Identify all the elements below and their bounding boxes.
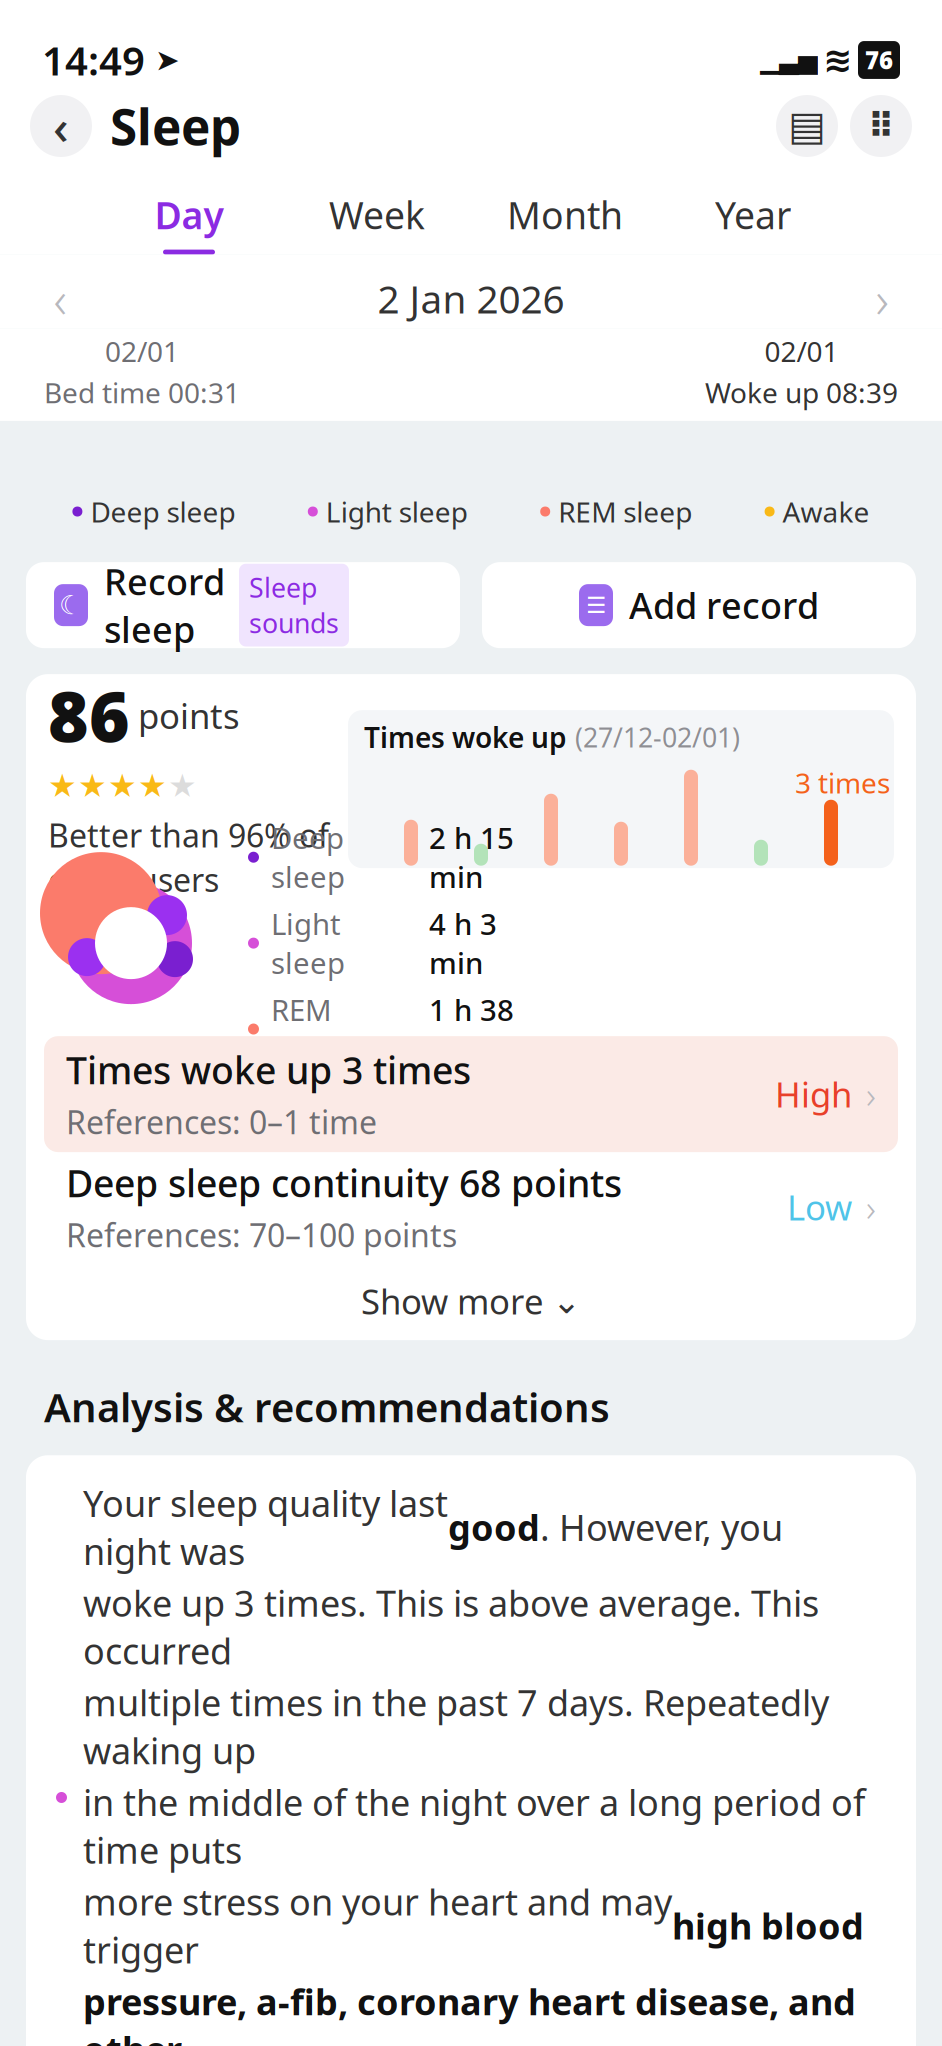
- staticText: Add record: [629, 581, 819, 629]
- staticText: 4 h 3 min: [429, 904, 497, 982]
- button[interactable]: Next day: [852, 269, 912, 329]
- staticText: ⌄: [552, 1281, 581, 1321]
- staticText: more stress on your heart and may trigge…: [83, 1878, 672, 1973]
- staticText: ›: [875, 265, 888, 332]
- staticText: Times woke up: [364, 718, 567, 756]
- button[interactable]: Deep sleep continuity 68 points: [44, 1152, 898, 1262]
- staticText: ⠿: [867, 106, 894, 146]
- staticText: 3 times: [795, 764, 890, 801]
- staticText: Deep sleep: [90, 493, 235, 530]
- button[interactable]: Day: [95, 190, 283, 255]
- staticText: 02/01: [764, 333, 838, 370]
- button[interactable]: Calendar: [776, 95, 838, 157]
- button[interactable]: Year: [659, 190, 847, 255]
- staticText: 14:49: [42, 33, 145, 86]
- staticText: Week: [329, 190, 425, 240]
- staticText: REM sleep: [271, 990, 345, 1068]
- staticText: high blood: [672, 1902, 864, 1949]
- staticText: 2 h 15 min: [429, 818, 514, 896]
- staticText: in the middle of the night over a long p…: [83, 1778, 865, 1874]
- staticText: woke up 3 times. This is above average. …: [83, 1579, 819, 1674]
- staticText: ➤: [145, 43, 180, 77]
- staticText: Deep sleep continuity 68 points: [66, 1158, 622, 1208]
- staticText: ★: [78, 767, 107, 804]
- staticText: ›: [866, 1069, 876, 1119]
- staticText: 86: [48, 669, 130, 761]
- button[interactable]: Previous day: [30, 269, 90, 329]
- staticText: 76: [865, 44, 893, 76]
- button[interactable]: Week: [283, 190, 471, 255]
- staticText: (27/12-02/01): [575, 719, 740, 755]
- staticText: Day: [154, 190, 223, 240]
- button[interactable]: Month: [471, 190, 659, 255]
- button[interactable]: ☰: [482, 562, 916, 648]
- staticText: ★: [168, 767, 197, 804]
- staticText: Awake: [783, 493, 870, 530]
- staticText: Woke up 08:39: [705, 374, 898, 411]
- staticText: multiple times in the past 7 days. Repea…: [83, 1678, 829, 1774]
- staticText: High: [775, 1071, 852, 1117]
- button[interactable]: ☾: [26, 562, 460, 648]
- staticText: good: [448, 1503, 540, 1551]
- staticText: Light sleep: [271, 904, 345, 982]
- staticText: ★: [138, 767, 167, 804]
- staticText: ▤: [788, 103, 826, 149]
- staticText: Low: [787, 1184, 852, 1230]
- staticText: points: [138, 692, 240, 738]
- staticText: 2 Jan 2026: [377, 273, 564, 324]
- staticText: References: 0–1 time: [66, 1101, 377, 1143]
- staticText: Month: [507, 190, 623, 240]
- staticText: ☾: [59, 590, 83, 620]
- staticText: Deep sleep: [271, 818, 345, 896]
- button[interactable]: Back: [30, 94, 92, 158]
- button[interactable]: More options: [850, 95, 912, 157]
- staticText: Year: [715, 190, 791, 240]
- staticText: Show more: [361, 1278, 544, 1324]
- staticText: Record sleep: [104, 557, 225, 653]
- staticText: ›: [866, 1182, 876, 1232]
- staticText: Light sleep: [326, 493, 468, 530]
- staticText: ‹: [53, 265, 66, 332]
- staticText: Analysis & recommendations: [44, 1380, 610, 1433]
- staticText: ★: [48, 767, 77, 804]
- staticText: ☰: [586, 592, 606, 618]
- staticText: References: 70–100 points: [66, 1214, 457, 1256]
- staticText: Your sleep quality last night was: [83, 1479, 448, 1575]
- staticText: other users: [48, 858, 219, 901]
- staticText: Sleep sounds: [249, 570, 339, 640]
- staticText: Sleep: [110, 93, 241, 159]
- staticText: 02/01: [105, 333, 179, 370]
- staticText: ≋: [823, 40, 852, 80]
- button[interactable]: Times woke up 3 times: [44, 1036, 898, 1152]
- button[interactable]: Show more: [26, 1262, 916, 1340]
- staticText: Bed time 00:31: [44, 374, 240, 411]
- staticText: [817, 45, 823, 75]
- staticText: REM sleep: [558, 493, 692, 530]
- staticText: ‹: [53, 94, 69, 158]
- staticText: 1 h 38 min: [429, 990, 514, 1068]
- staticText: . However, you: [540, 1503, 783, 1551]
- staticText: Better than 96% of: [48, 814, 329, 856]
- staticText: ▁▃▅: [760, 46, 817, 74]
- staticText: Times woke up 3 times: [66, 1045, 471, 1095]
- staticText: ★: [108, 767, 137, 804]
- staticText: pressure, a-fib, coronary heart disease,…: [83, 1977, 856, 2046]
